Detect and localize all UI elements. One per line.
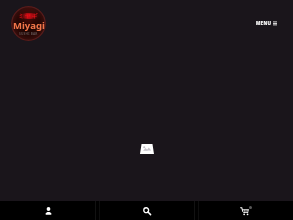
button[interactable]: Search: [100, 201, 194, 220]
button[interactable]: Account: [0, 201, 95, 220]
staticText: ミヤギ: [18, 12, 39, 20]
button[interactable]: ミヤギ: [11, 6, 46, 41]
staticText: Miyagi: [13, 19, 45, 32]
button[interactable]: Cart: [199, 201, 293, 220]
button[interactable]: Menu: [256, 20, 277, 26]
staticText: SUSHI BAR: [19, 32, 38, 36]
staticText: MENU: [256, 20, 272, 26]
